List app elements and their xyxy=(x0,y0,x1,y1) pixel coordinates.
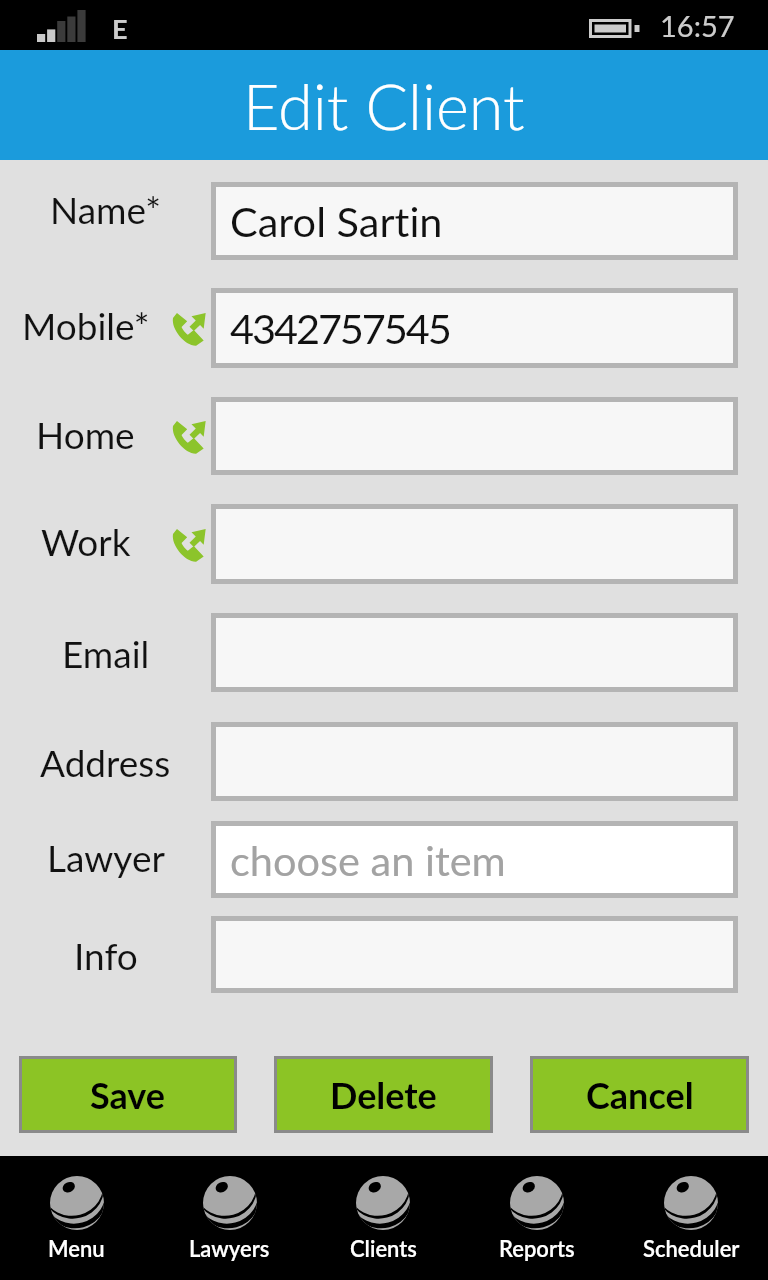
button[interactable]: 4342757545 xyxy=(216,293,733,363)
staticText: Edit Client xyxy=(243,68,525,144)
other: Call xyxy=(173,527,206,562)
staticText: Name* xyxy=(50,187,161,231)
button[interactable]: Carol Sartin xyxy=(216,187,733,255)
staticText: 4342757545 xyxy=(230,303,450,353)
staticText: Work xyxy=(41,519,131,563)
button[interactable]: Cancel xyxy=(533,1059,746,1130)
staticText: Reports xyxy=(499,1235,575,1261)
staticText: Carol Sartin xyxy=(230,196,443,246)
staticText: 16:57 xyxy=(660,8,735,43)
staticText: E xyxy=(112,12,128,44)
staticText: Home xyxy=(36,412,135,456)
staticText: Clients xyxy=(350,1235,417,1261)
button[interactable]: Delete xyxy=(277,1059,490,1130)
staticText: Scheduler xyxy=(643,1235,740,1261)
other: Call xyxy=(173,311,206,346)
staticText: Mobile* xyxy=(22,303,150,347)
button[interactable]: Menu xyxy=(0,1156,153,1280)
staticText: Save xyxy=(90,1073,166,1116)
staticText: Lawyers xyxy=(189,1235,270,1261)
staticText: Delete xyxy=(330,1073,437,1116)
button[interactable]: Lawyers xyxy=(153,1156,306,1280)
staticText: Address xyxy=(40,740,171,784)
staticText: Cancel xyxy=(586,1073,694,1116)
button[interactable]: Save xyxy=(22,1059,234,1130)
button[interactable]: choose an item xyxy=(216,826,733,893)
staticText: Email xyxy=(62,631,150,675)
button[interactable]: Reports xyxy=(460,1156,614,1280)
staticText: Lawyer xyxy=(47,835,165,879)
staticText: Menu xyxy=(48,1235,105,1261)
staticText: choose an item xyxy=(230,835,506,885)
other: Call xyxy=(173,419,206,454)
staticText: Info xyxy=(74,933,138,977)
button[interactable]: Scheduler xyxy=(614,1156,768,1280)
button[interactable]: Clients xyxy=(306,1156,460,1280)
